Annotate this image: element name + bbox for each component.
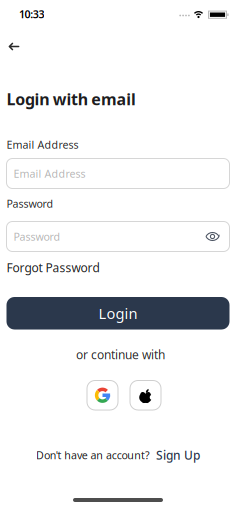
staticText: Email Address	[13, 166, 85, 181]
staticText: Don't have an account?	[36, 448, 150, 462]
staticText: Sign Up	[156, 447, 200, 463]
staticText: Login with email	[6, 88, 136, 110]
staticText: Email Address	[6, 137, 78, 152]
staticText: Password	[13, 229, 60, 244]
button[interactable]: Forgot Password	[6, 261, 99, 273]
button[interactable]: Email Address	[6, 158, 229, 188]
staticText: or continue with	[76, 346, 165, 362]
staticText: Password	[6, 196, 53, 211]
button[interactable]: Password	[6, 221, 229, 251]
staticText: Forgot Password	[6, 259, 99, 275]
button[interactable]	[87, 380, 118, 410]
button[interactable]: Login	[6, 297, 229, 329]
staticText: Login	[98, 303, 137, 323]
button[interactable]	[130, 380, 161, 410]
button[interactable]	[5, 37, 23, 55]
button[interactable]: Sign Up	[156, 447, 200, 463]
staticText: 10:33	[19, 7, 44, 21]
